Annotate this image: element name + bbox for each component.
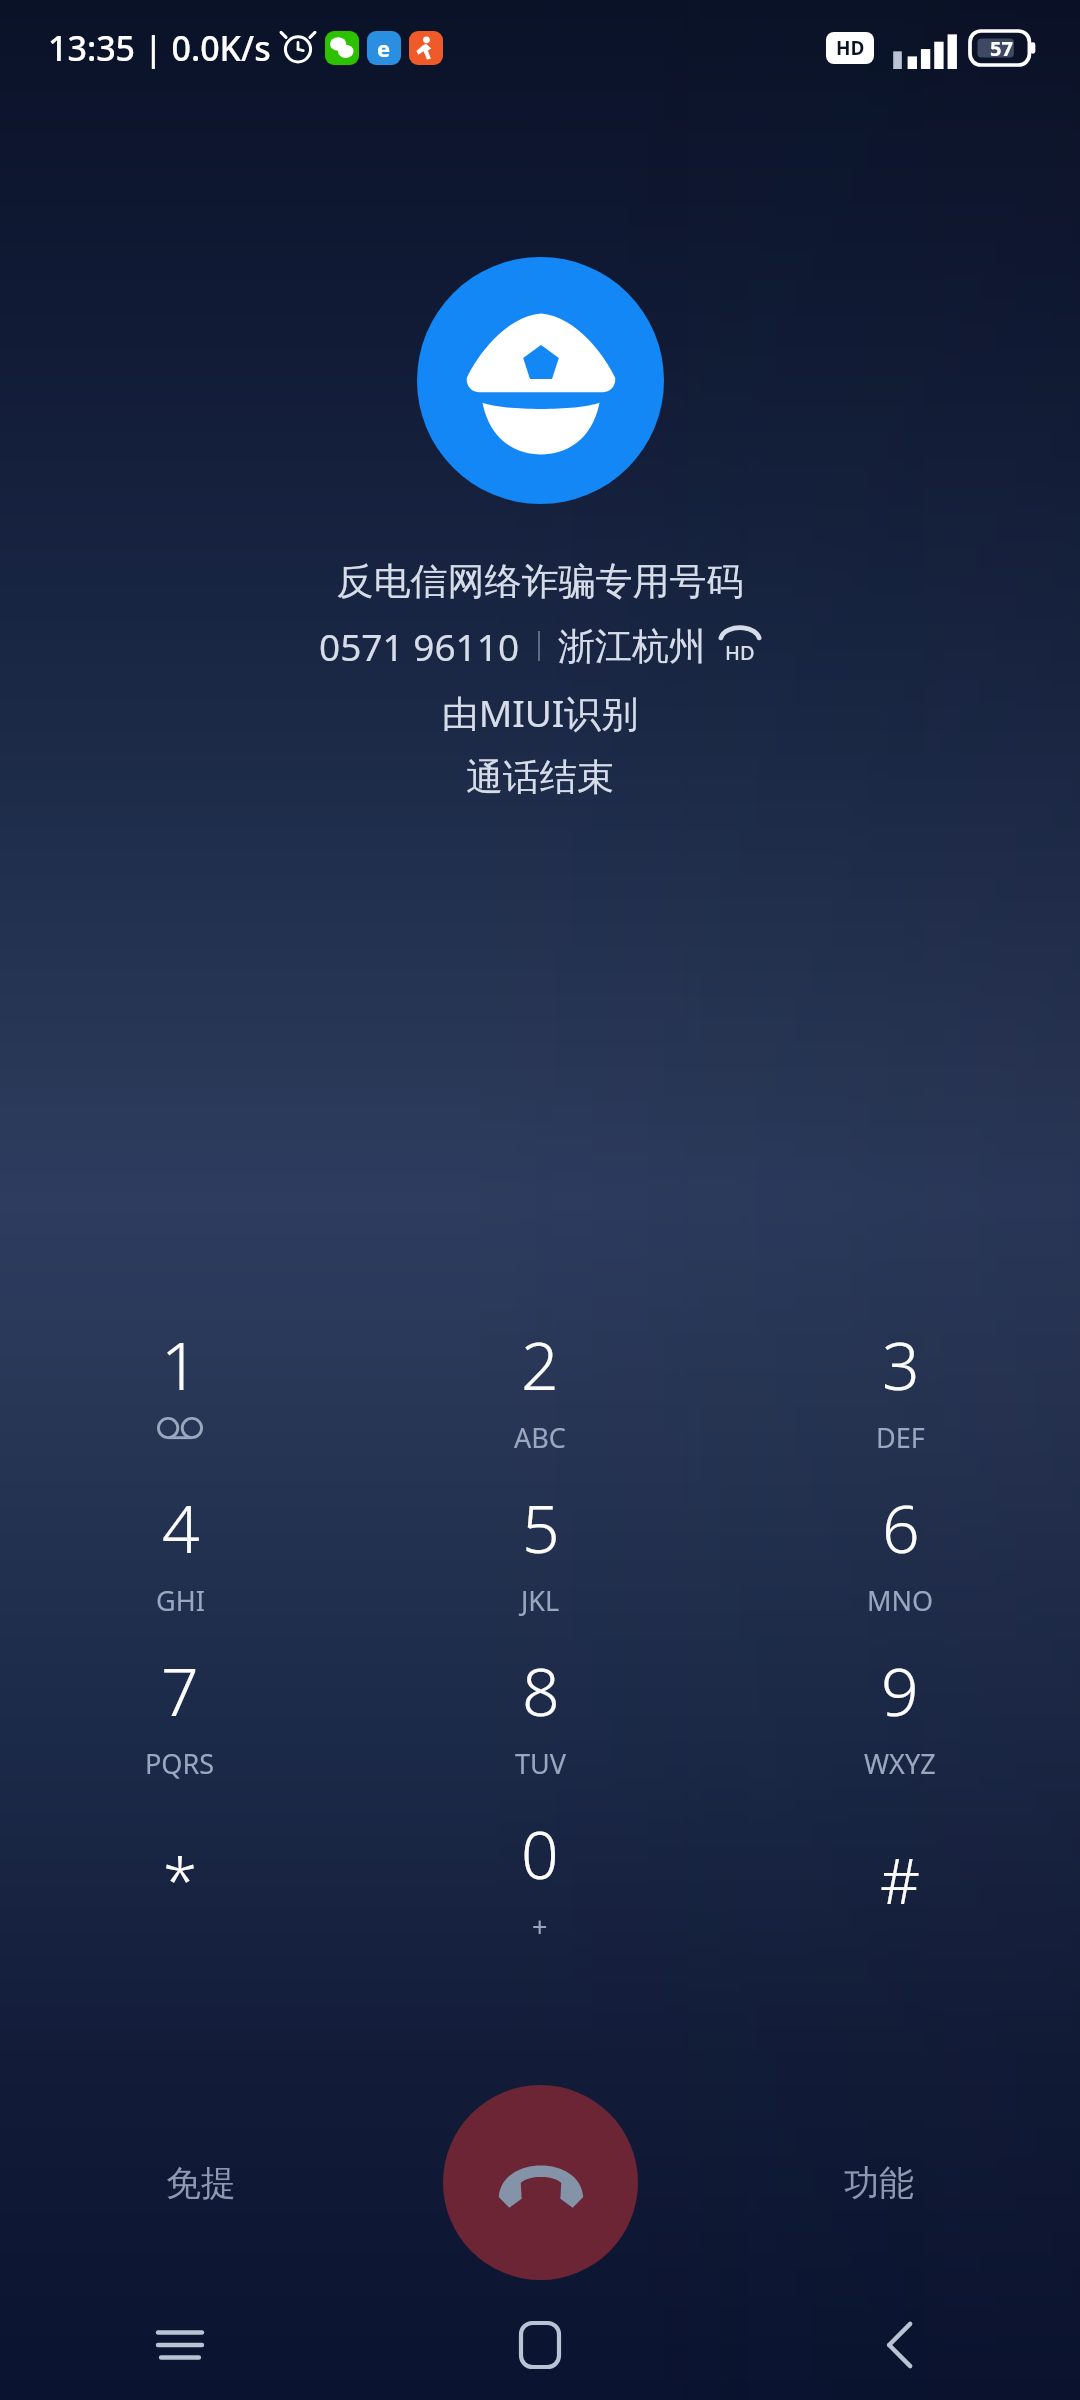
staticText: 0571 96110 xyxy=(319,621,520,671)
button[interactable]: Caller avatar xyxy=(417,257,664,504)
button[interactable]: # xyxy=(720,1802,1080,1965)
staticText: 2 xyxy=(521,1319,559,1409)
staticText: + xyxy=(532,1908,548,1945)
staticText: 9 xyxy=(881,1645,919,1735)
staticText: e xyxy=(377,33,391,63)
button[interactable]: 6 xyxy=(720,1476,1080,1639)
staticText: 免提 xyxy=(166,2161,236,2205)
staticText: * xyxy=(163,1838,198,1922)
button[interactable]: Recent apps xyxy=(0,2290,360,2400)
staticText: 通话结束 xyxy=(0,754,1080,801)
staticText: 5 xyxy=(522,1482,560,1572)
staticText: 8 xyxy=(522,1645,560,1735)
staticText: DEF xyxy=(876,1419,925,1456)
button[interactable]: 8 xyxy=(360,1639,720,1802)
staticText: PQRS xyxy=(145,1745,215,1782)
staticText: 功能 xyxy=(844,2161,914,2205)
button[interactable]: Back xyxy=(720,2290,1080,2400)
staticText: 7 xyxy=(161,1645,199,1735)
button[interactable]: 功能 xyxy=(820,2141,938,2225)
staticText: 0 xyxy=(521,1808,559,1898)
button[interactable]: * xyxy=(0,1802,360,1965)
staticText: 4 xyxy=(162,1482,200,1572)
staticText: 反电信网络诈骗专用号码 xyxy=(0,558,1080,605)
staticText: TUV xyxy=(515,1745,566,1782)
button[interactable]: 免提 xyxy=(142,2141,260,2225)
staticText: 由MIUI识别 xyxy=(0,687,1080,738)
staticText: HD xyxy=(725,639,755,666)
staticText: 6 xyxy=(882,1482,920,1572)
staticText: HD xyxy=(836,35,865,61)
staticText: ABC xyxy=(514,1419,566,1456)
button[interactable]: 2 xyxy=(360,1313,720,1476)
button[interactable]: 3 xyxy=(720,1313,1080,1476)
staticText: MNO xyxy=(867,1582,934,1619)
button[interactable]: 9 xyxy=(720,1639,1080,1802)
staticText: 3 xyxy=(882,1319,920,1409)
staticText: GHI xyxy=(156,1582,205,1619)
staticText: 13:35 | 0.0K/s xyxy=(48,25,271,71)
staticText: WXYZ xyxy=(864,1745,936,1782)
staticText: JKL xyxy=(521,1582,560,1619)
button[interactable]: 0 xyxy=(360,1802,720,1965)
button[interactable]: 1 xyxy=(0,1313,360,1476)
button[interactable]: 5 xyxy=(360,1476,720,1639)
button[interactable]: Home xyxy=(360,2290,720,2400)
staticText: 1 xyxy=(161,1319,199,1409)
staticText: 浙江杭州 xyxy=(558,623,706,670)
button[interactable]: End call xyxy=(443,2085,638,2280)
other: Voicemail xyxy=(157,1417,203,1439)
staticText: # xyxy=(880,1838,921,1922)
button[interactable]: 4 xyxy=(0,1476,360,1639)
staticText: 57 xyxy=(990,35,1013,62)
button[interactable]: 7 xyxy=(0,1639,360,1802)
